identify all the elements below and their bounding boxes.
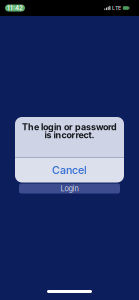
- staticText: Login: [60, 184, 78, 193]
- staticText: LTE: [112, 5, 121, 11]
- staticText: Cancel: [52, 163, 87, 176]
- button[interactable]: Cancel: [15, 157, 124, 182]
- button[interactable]: Login: [19, 183, 120, 193]
- staticText: The login or password: [22, 122, 117, 132]
- staticText: 11:42: [7, 4, 23, 12]
- staticText: is incorrect.: [44, 130, 94, 140]
